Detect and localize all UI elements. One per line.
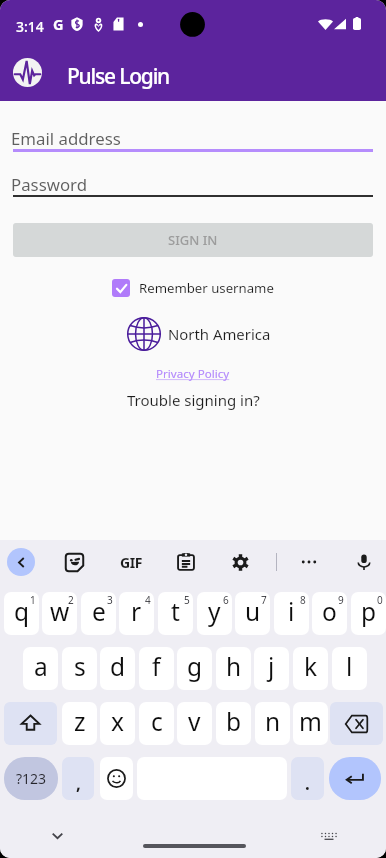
- button[interactable]: h: [216, 647, 251, 690]
- staticText: s: [74, 650, 86, 683]
- button[interactable]: y: [197, 592, 232, 635]
- button[interactable]: Stickers: [59, 547, 89, 577]
- button[interactable]: w: [42, 592, 77, 635]
- staticText: G: [53, 14, 64, 34]
- staticText: y: [208, 595, 221, 628]
- staticText: 4: [145, 593, 151, 607]
- button[interactable]: Backspace: [330, 702, 383, 745]
- button[interactable]: i: [274, 592, 309, 635]
- staticText: 6: [223, 593, 229, 607]
- staticText: 3: [107, 593, 113, 607]
- button[interactable]: Enter: [329, 757, 381, 800]
- staticText: 2: [68, 593, 74, 607]
- staticText: h: [226, 650, 242, 683]
- button[interactable]: More options: [294, 547, 324, 577]
- button[interactable]: x: [100, 702, 135, 745]
- button[interactable]: Clipboard: [171, 547, 201, 577]
- staticText: m: [299, 705, 322, 738]
- button[interactable]: e: [81, 592, 116, 635]
- button[interactable]: r: [119, 592, 154, 635]
- button[interactable]: t: [158, 592, 193, 635]
- button[interactable]: n: [255, 702, 290, 745]
- button[interactable]: Hide keyboard: [43, 821, 71, 849]
- button[interactable]: z: [62, 702, 97, 745]
- staticText: c: [151, 705, 163, 738]
- button[interactable]: Email address: [13, 127, 373, 152]
- staticText: k: [304, 650, 318, 683]
- staticText: 9: [338, 593, 344, 607]
- staticText: o: [322, 595, 337, 628]
- button[interactable]: l: [332, 647, 367, 690]
- button[interactable]: d: [100, 647, 135, 690]
- staticText: Remember username: [139, 279, 274, 297]
- staticText: b: [226, 705, 242, 738]
- button[interactable]: v: [177, 702, 212, 745]
- button[interactable]: p: [351, 592, 386, 635]
- staticText: f: [152, 650, 161, 683]
- staticText: SIGN IN: [168, 231, 218, 249]
- button[interactable]: Shift: [4, 702, 57, 745]
- staticText: v: [188, 705, 201, 738]
- staticText: ,: [76, 772, 81, 795]
- staticText: j: [268, 650, 275, 683]
- staticText: 1: [30, 593, 36, 607]
- button[interactable]: q: [4, 592, 39, 635]
- button[interactable]: Privacy Policy: [156, 366, 230, 382]
- staticText: z: [74, 705, 86, 738]
- staticText: l: [346, 650, 353, 683]
- button[interactable]: s: [62, 647, 97, 690]
- button[interactable]: f: [139, 647, 174, 690]
- staticText: 8: [300, 593, 306, 607]
- button[interactable]: u: [235, 592, 270, 635]
- button[interactable]: Remember username: [110, 277, 276, 299]
- button[interactable]: Symbols: [4, 757, 58, 800]
- button[interactable]: SIGN IN: [13, 223, 373, 257]
- staticText: Pulse Login: [67, 62, 170, 91]
- button[interactable]: Trouble signing in?: [127, 390, 260, 410]
- staticText: Password: [11, 173, 87, 196]
- button[interactable]: j: [254, 647, 289, 690]
- staticText: x: [111, 705, 124, 738]
- staticText: North America: [168, 324, 271, 344]
- button[interactable]: b: [216, 702, 251, 745]
- staticText: n: [265, 705, 281, 738]
- staticText: q: [14, 595, 30, 628]
- staticText: i: [288, 595, 295, 628]
- staticText: 3:14: [16, 17, 44, 36]
- staticText: p: [361, 595, 377, 628]
- button[interactable]: Comma: [62, 757, 94, 800]
- button[interactable]: a: [23, 647, 58, 690]
- button[interactable]: Voice input: [349, 547, 379, 577]
- button[interactable]: g: [177, 647, 212, 690]
- button[interactable]: Emoji: [100, 757, 133, 800]
- staticText: d: [110, 650, 126, 683]
- staticText: 0: [377, 593, 383, 607]
- staticText: r: [131, 595, 142, 628]
- staticText: u: [245, 595, 261, 628]
- button[interactable]: Back: [7, 548, 35, 576]
- button[interactable]: c: [139, 702, 174, 745]
- button[interactable]: Password: [13, 173, 373, 197]
- staticText: 5: [184, 593, 190, 607]
- staticText: 7: [261, 593, 267, 607]
- button[interactable]: o: [312, 592, 347, 635]
- button[interactable]: k: [293, 647, 328, 690]
- staticText: GIF: [120, 553, 143, 572]
- button[interactable]: m: [293, 702, 328, 745]
- staticText: g: [187, 650, 203, 683]
- staticText: ?123: [16, 769, 47, 788]
- button[interactable]: Settings: [225, 547, 255, 577]
- button[interactable]: Switch keyboard: [315, 822, 343, 850]
- staticText: Email address: [11, 127, 121, 150]
- staticText: a: [34, 650, 48, 683]
- staticText: e: [92, 595, 106, 628]
- button[interactable]: North America: [126, 316, 271, 352]
- button[interactable]: GIF: [116, 547, 146, 577]
- staticText: w: [50, 595, 70, 628]
- staticText: t: [171, 595, 180, 628]
- staticText: .: [305, 772, 310, 795]
- button[interactable]: Period: [291, 757, 324, 800]
